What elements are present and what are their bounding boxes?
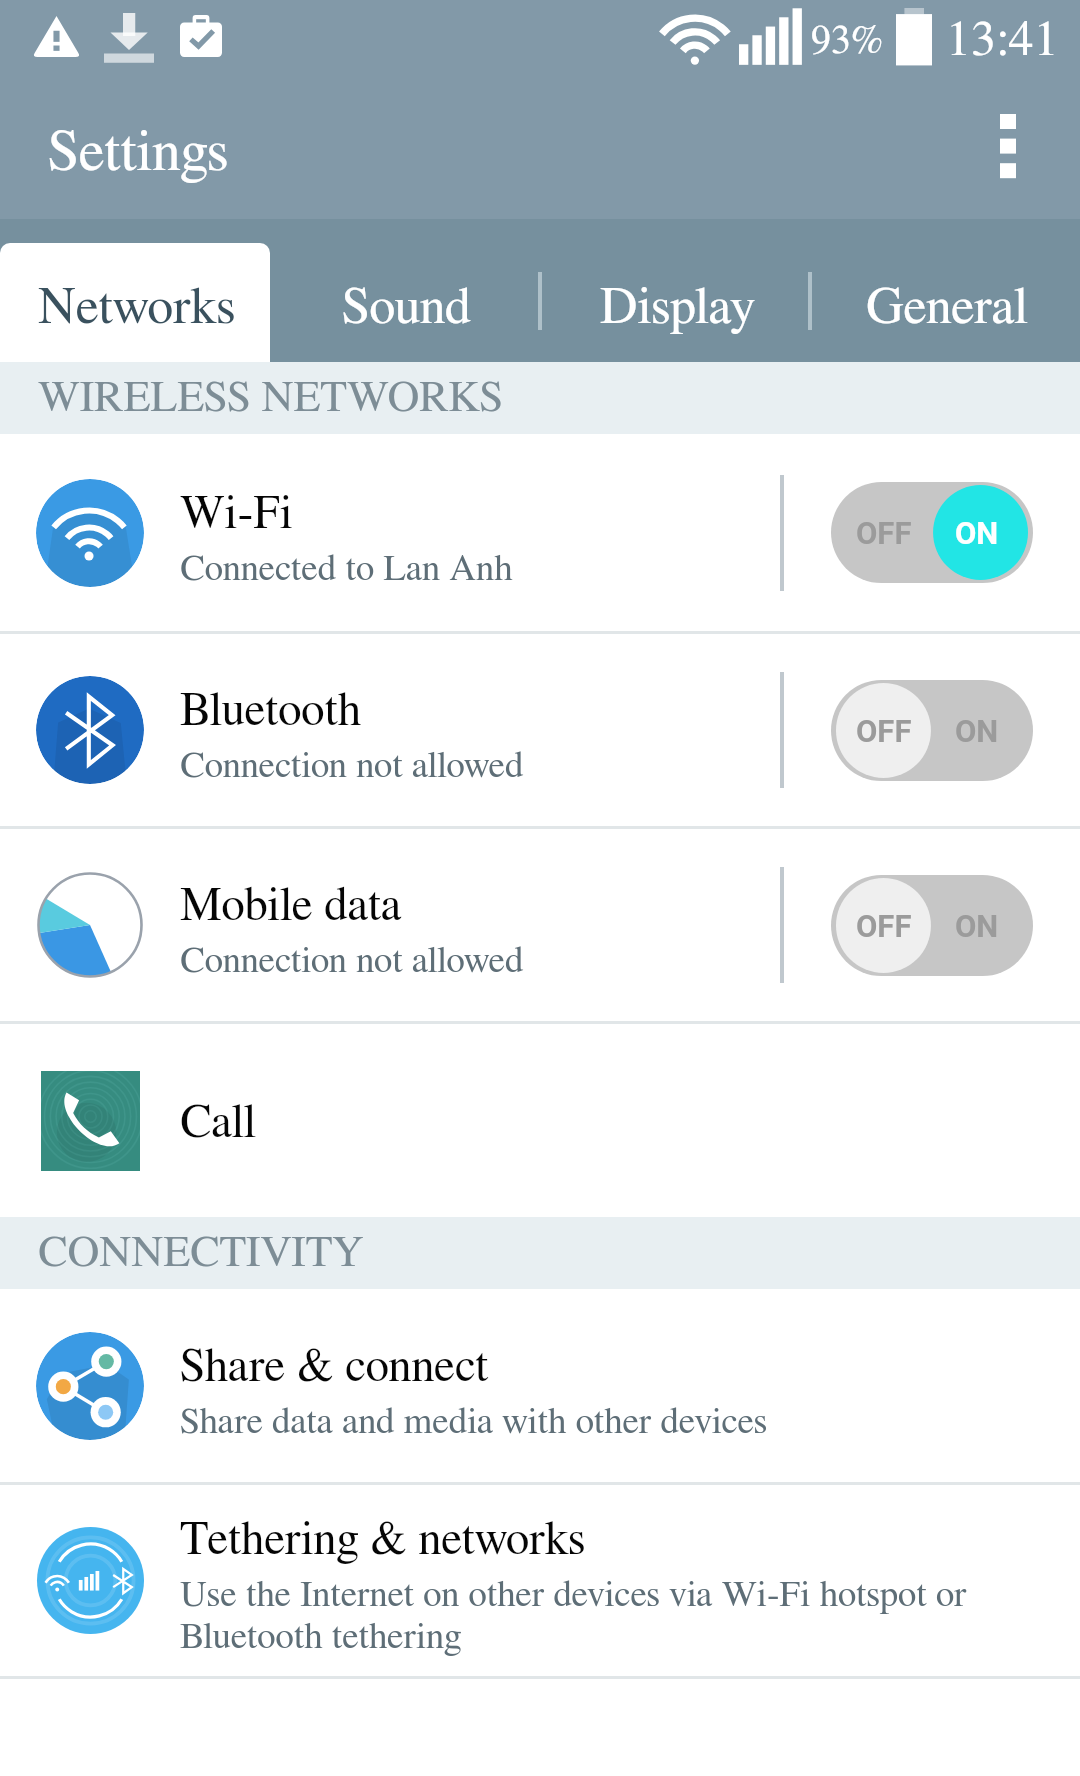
- button[interactable]: Sound: [270, 219, 540, 362]
- button[interactable]: General: [810, 219, 1080, 362]
- button[interactable]: Mobile data: [0, 829, 1080, 1021]
- staticText: Mobile data: [180, 882, 402, 929]
- staticText: OFF: [856, 515, 912, 551]
- button[interactable]: Call: [0, 1024, 1080, 1217]
- staticText: Sound: [342, 281, 472, 333]
- staticText: Bluetooth: [180, 687, 362, 734]
- staticText: Connection not allowed: [180, 747, 524, 784]
- staticText: CONNECTIVITY: [38, 1231, 364, 1275]
- staticText: ON: [955, 908, 999, 944]
- staticText: OFF: [856, 908, 912, 944]
- button[interactable]: Bluetooth switch: [784, 634, 1080, 826]
- staticText: Networks: [38, 281, 236, 333]
- staticText: Share & connect: [180, 1343, 489, 1390]
- staticText: Settings: [48, 124, 229, 182]
- staticText: Use the Internet on other devices via Wi…: [180, 1576, 967, 1656]
- button[interactable]: Wi-Fi switch: [784, 434, 1080, 631]
- staticText: Connected to Lan Anh: [180, 550, 513, 587]
- staticText: 13:41: [946, 15, 1059, 65]
- button[interactable]: Networks: [0, 219, 270, 362]
- button[interactable]: Display: [540, 219, 810, 362]
- staticText: 93%: [811, 21, 883, 61]
- staticText: General: [866, 281, 1028, 333]
- staticText: Display: [600, 281, 755, 333]
- button[interactable]: Wi-Fi: [0, 434, 1080, 631]
- staticText: ON: [955, 515, 999, 551]
- staticText: Share data and media with other devices: [180, 1403, 768, 1440]
- staticText: WIRELESS NETWORKS: [38, 376, 503, 420]
- staticText: Call: [180, 1099, 256, 1146]
- staticText: Tethering & networks: [180, 1516, 586, 1563]
- button[interactable]: Bluetooth: [0, 634, 1080, 826]
- button[interactable]: More options: [964, 86, 1052, 206]
- button[interactable]: Share & connect: [0, 1289, 1080, 1482]
- button[interactable]: Mobile data switch: [784, 829, 1080, 1021]
- staticText: ON: [955, 713, 999, 749]
- staticText: OFF: [856, 713, 912, 749]
- staticText: Wi-Fi: [180, 490, 293, 537]
- staticText: Connection not allowed: [180, 942, 524, 979]
- button[interactable]: Tethering & networks: [0, 1485, 1080, 1676]
